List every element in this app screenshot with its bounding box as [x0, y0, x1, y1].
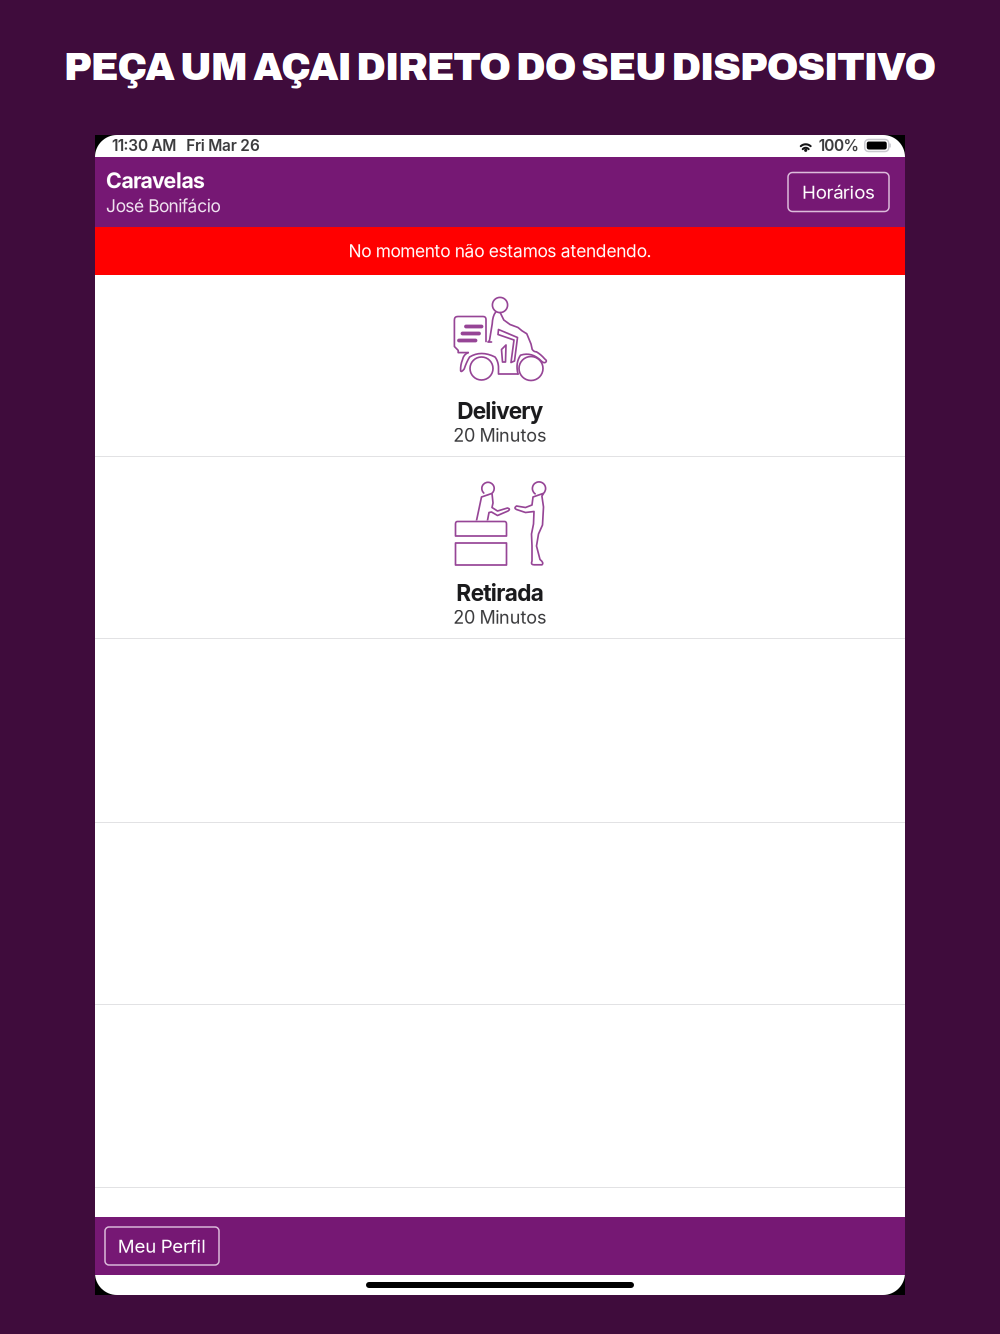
button[interactable]: Delivery — [95, 275, 905, 456]
staticText: 20 Minutos — [453, 424, 547, 446]
button[interactable]: Meu Perfil — [105, 1227, 219, 1265]
staticText: José Bonifácio — [106, 195, 220, 216]
button[interactable]: Retirada — [95, 457, 905, 638]
staticText: Horários — [802, 181, 875, 203]
staticText: 20 Minutos — [453, 606, 547, 628]
staticText: Retirada — [456, 579, 544, 606]
staticText: PEÇA UM AÇAI DIRETO DO SEU DISPOSITIVO — [64, 46, 936, 88]
button[interactable]: Horários — [788, 172, 889, 211]
staticText: No momento não estamos atendendo. — [348, 240, 651, 261]
staticText: Meu Perfil — [118, 1235, 206, 1257]
staticText: 100% — [819, 136, 858, 155]
staticText: Caravelas — [106, 168, 205, 193]
staticText: 11:30 AM — [112, 136, 176, 155]
staticText: Delivery — [457, 397, 543, 424]
staticText: Fri Mar 26 — [186, 136, 260, 155]
